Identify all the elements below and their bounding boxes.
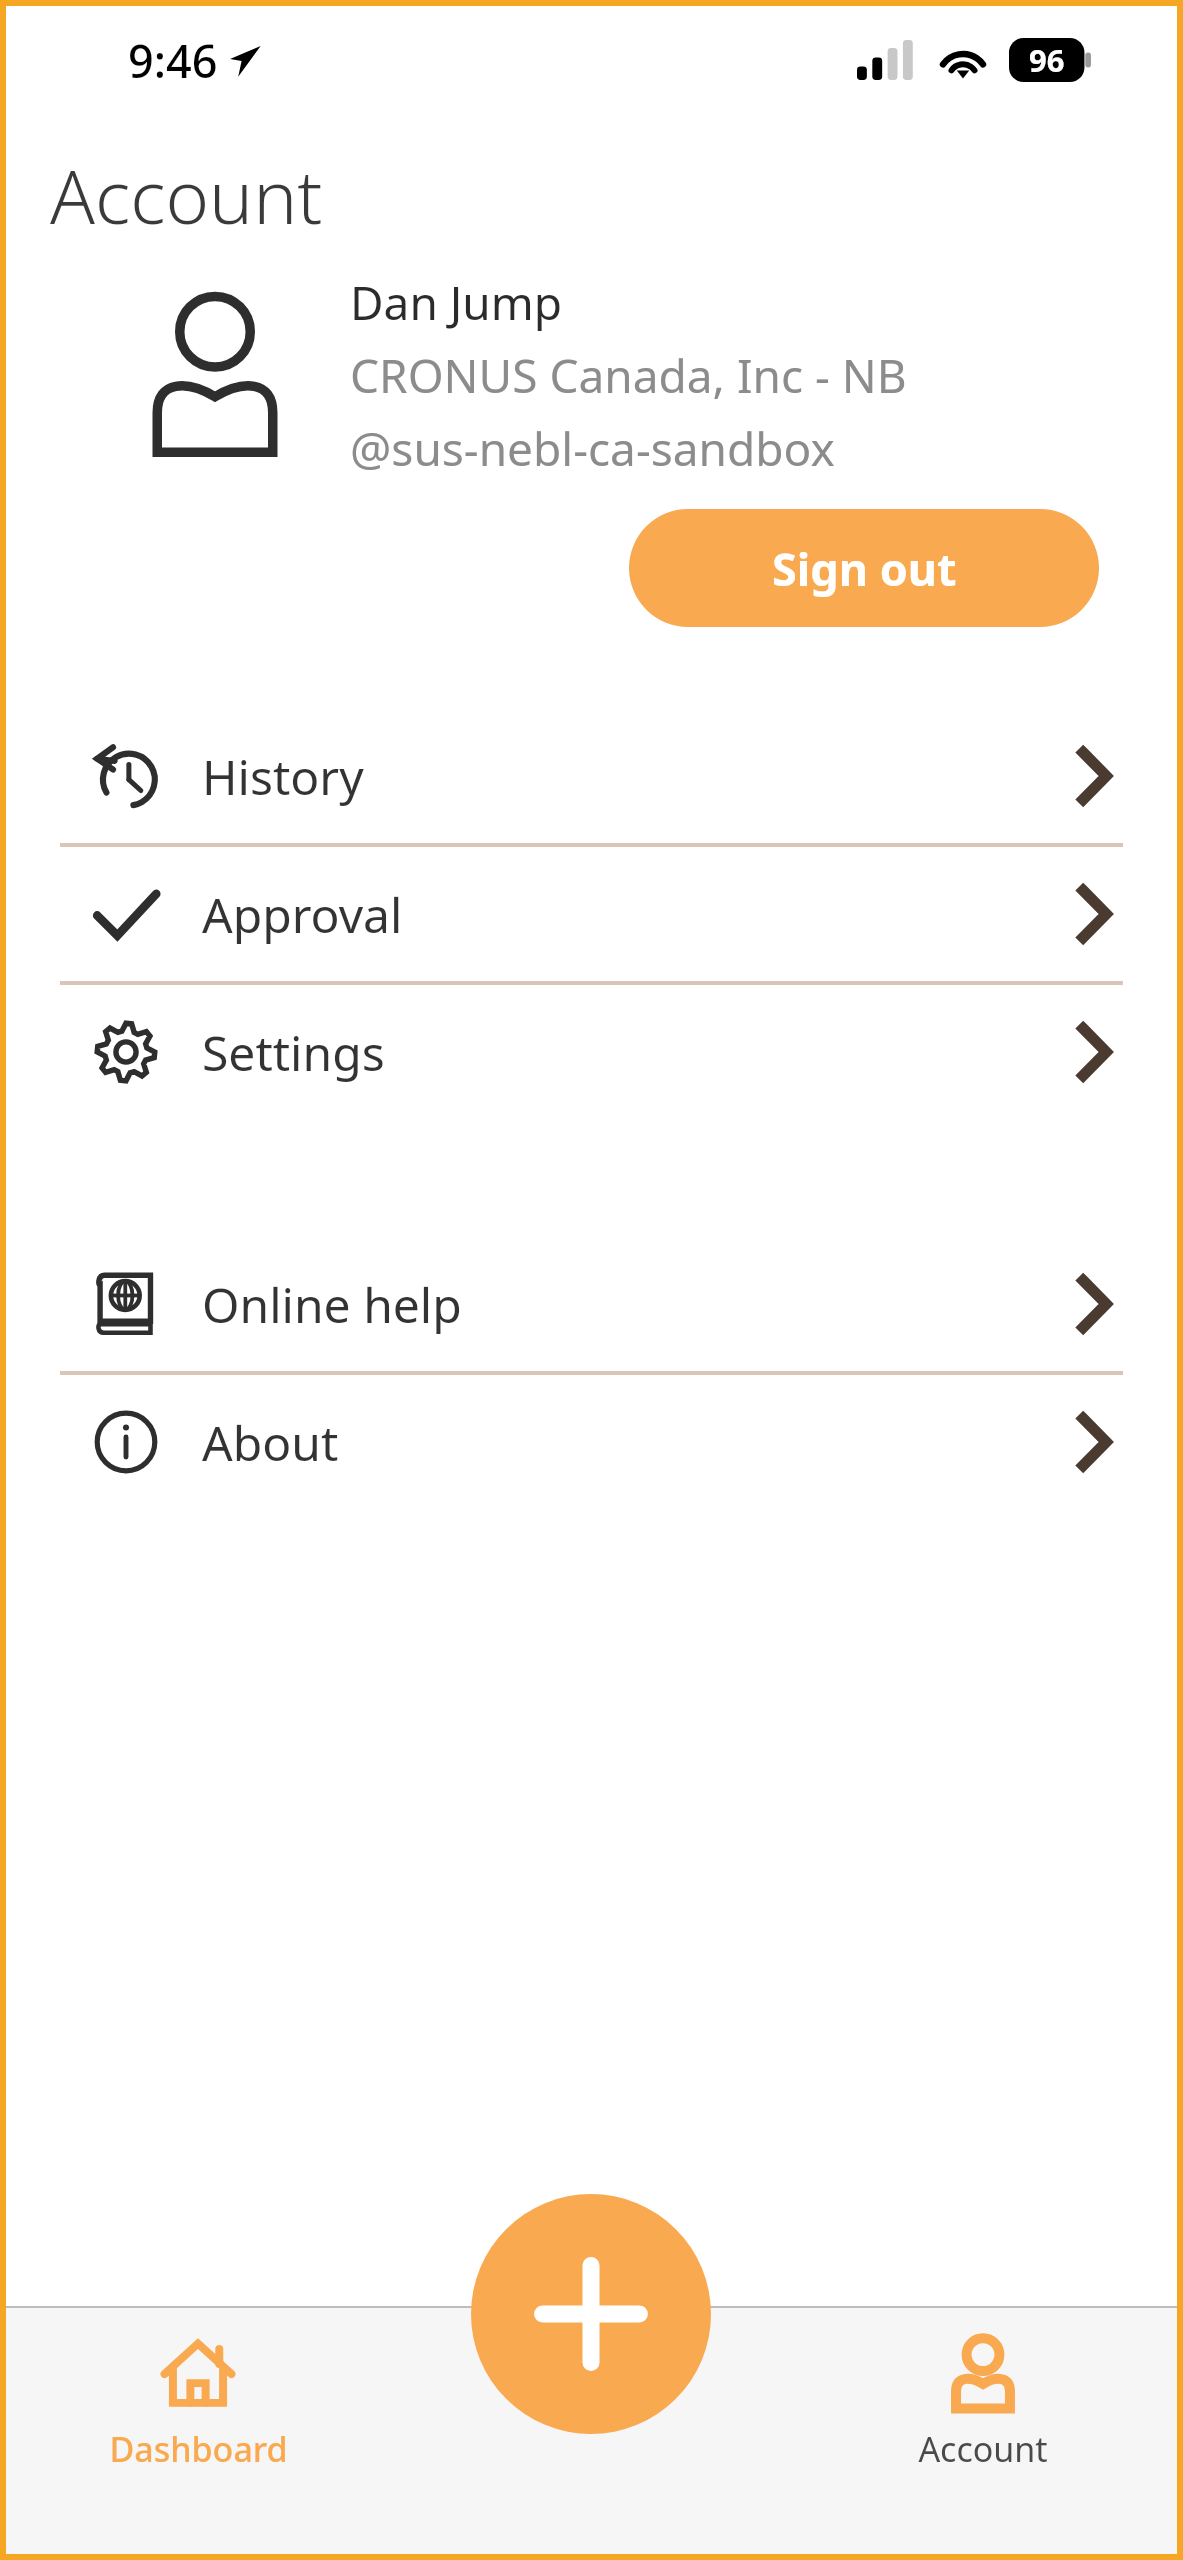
button[interactable]: Approval (0, 847, 1183, 981)
staticText: Online help (202, 1272, 462, 1337)
button[interactable]: Online help (0, 1237, 1183, 1371)
staticText: Approval (202, 882, 403, 947)
staticText: 96 (1029, 39, 1065, 81)
staticText: Dashboard (109, 2426, 288, 2472)
button[interactable]: Dashboard (108, 2336, 288, 2472)
staticText: Account (50, 145, 323, 246)
staticText: About (202, 1410, 339, 1475)
staticText: 9:46 (128, 30, 218, 91)
staticText: Dan Jump (350, 271, 563, 334)
button[interactable]: Sign out (629, 509, 1099, 627)
button[interactable]: About (0, 1375, 1183, 1509)
staticText: History (202, 744, 364, 809)
staticText: Sign out (772, 538, 957, 599)
button[interactable]: Add (471, 2194, 711, 2434)
button[interactable]: History (0, 709, 1183, 843)
staticText: @sus-nebl-ca-sandbox (350, 417, 835, 480)
staticText: Settings (202, 1020, 385, 1085)
staticText: CRONUS Canada, Inc - NB (350, 344, 907, 407)
button[interactable]: Account (893, 2336, 1073, 2472)
button[interactable]: Settings (0, 985, 1183, 1119)
staticText: Account (918, 2426, 1048, 2472)
